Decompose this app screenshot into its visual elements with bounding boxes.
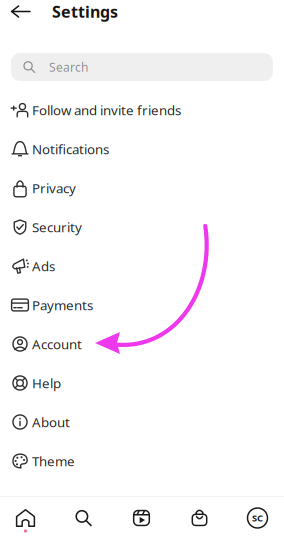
button[interactable]: Security (0, 207, 284, 246)
button[interactable]: Theme (0, 441, 284, 480)
button[interactable]: Reels (112, 497, 170, 539)
staticText: Security (32, 218, 82, 236)
button[interactable]: Privacy (0, 168, 284, 207)
staticText: Privacy (32, 179, 76, 197)
button[interactable]: Back (5, 0, 36, 22)
staticText: Search (49, 59, 88, 75)
staticText: Settings (52, 1, 118, 22)
staticText: Ads (32, 257, 55, 275)
button[interactable]: Profile (228, 497, 284, 539)
button[interactable]: Notifications (0, 129, 284, 168)
button[interactable]: Search (0, 53, 284, 81)
button[interactable]: Shop (170, 497, 228, 539)
button[interactable]: Search (54, 497, 112, 539)
button[interactable]: Home (0, 497, 54, 539)
staticText: SC (252, 512, 263, 524)
button[interactable]: About (0, 402, 284, 441)
staticText: Follow and invite friends (32, 101, 181, 119)
staticText: Account (32, 335, 82, 353)
staticText: About (32, 413, 70, 431)
button[interactable]: Ads (0, 246, 284, 285)
button[interactable]: Account (0, 324, 284, 363)
staticText: Help (32, 374, 61, 392)
button[interactable]: Follow and invite friends (0, 90, 284, 129)
staticText: Payments (32, 296, 93, 314)
button[interactable]: Help (0, 363, 284, 402)
button[interactable]: Payments (0, 285, 284, 324)
staticText: Theme (32, 452, 75, 470)
staticText: Notifications (32, 140, 109, 158)
